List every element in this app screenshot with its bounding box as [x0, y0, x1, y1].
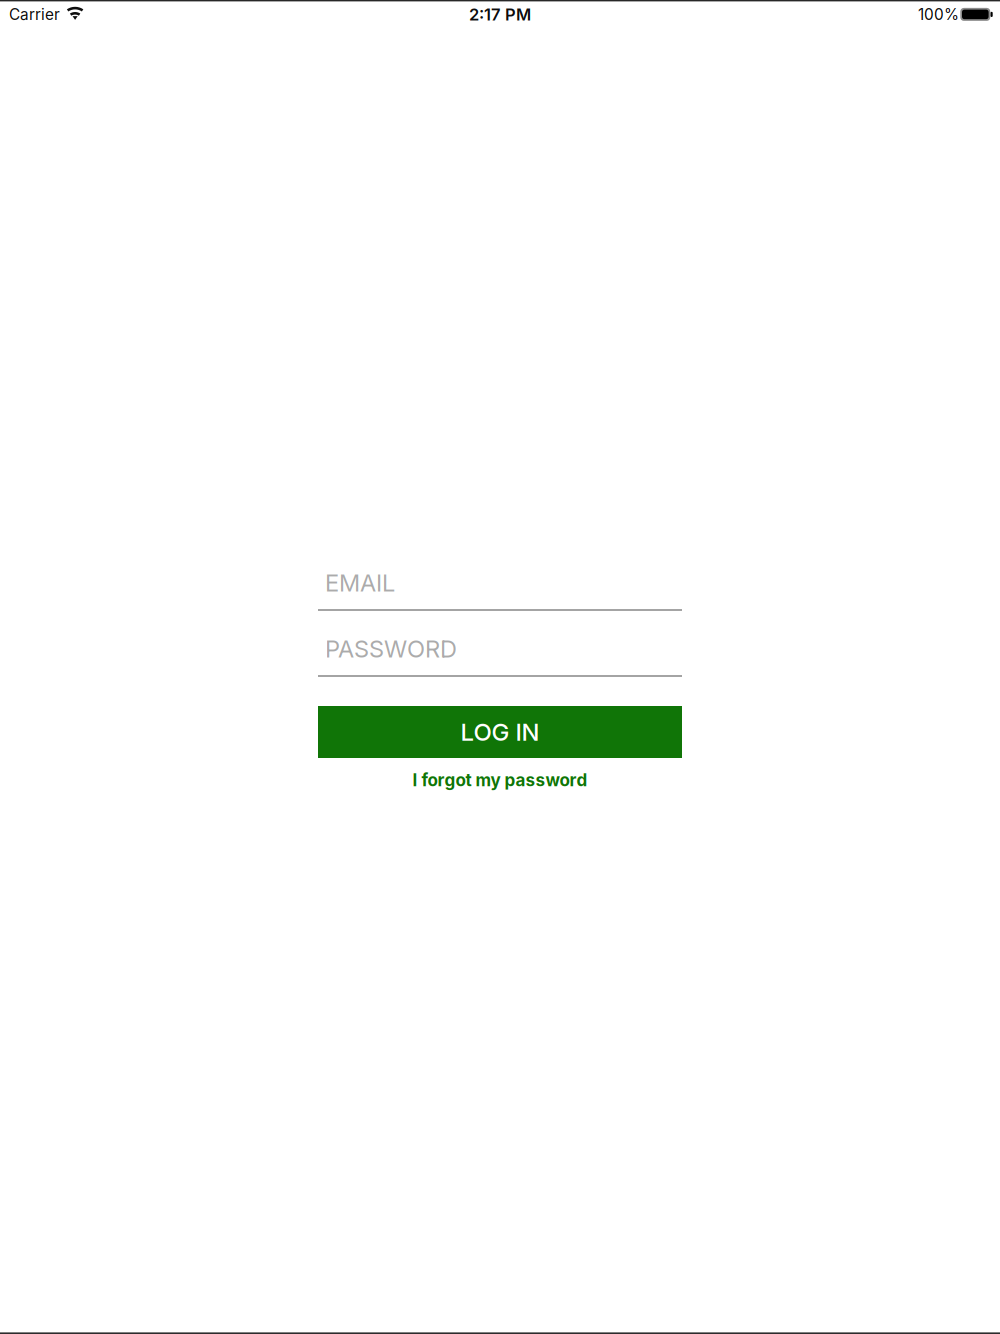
- button[interactable]: LOG IN: [318, 706, 682, 758]
- staticText: LOG IN: [460, 717, 539, 746]
- button[interactable]: EMAIL: [318, 568, 682, 611]
- staticText: 2:17 PM: [469, 4, 531, 24]
- staticText: Carrier: [9, 5, 60, 24]
- staticText: 100%: [918, 5, 959, 24]
- staticText: PASSWORD: [325, 635, 457, 663]
- staticText: I forgot my password: [412, 770, 587, 790]
- staticText: EMAIL: [325, 569, 395, 597]
- button[interactable]: I forgot my password: [318, 767, 682, 793]
- button[interactable]: PASSWORD: [318, 634, 682, 677]
